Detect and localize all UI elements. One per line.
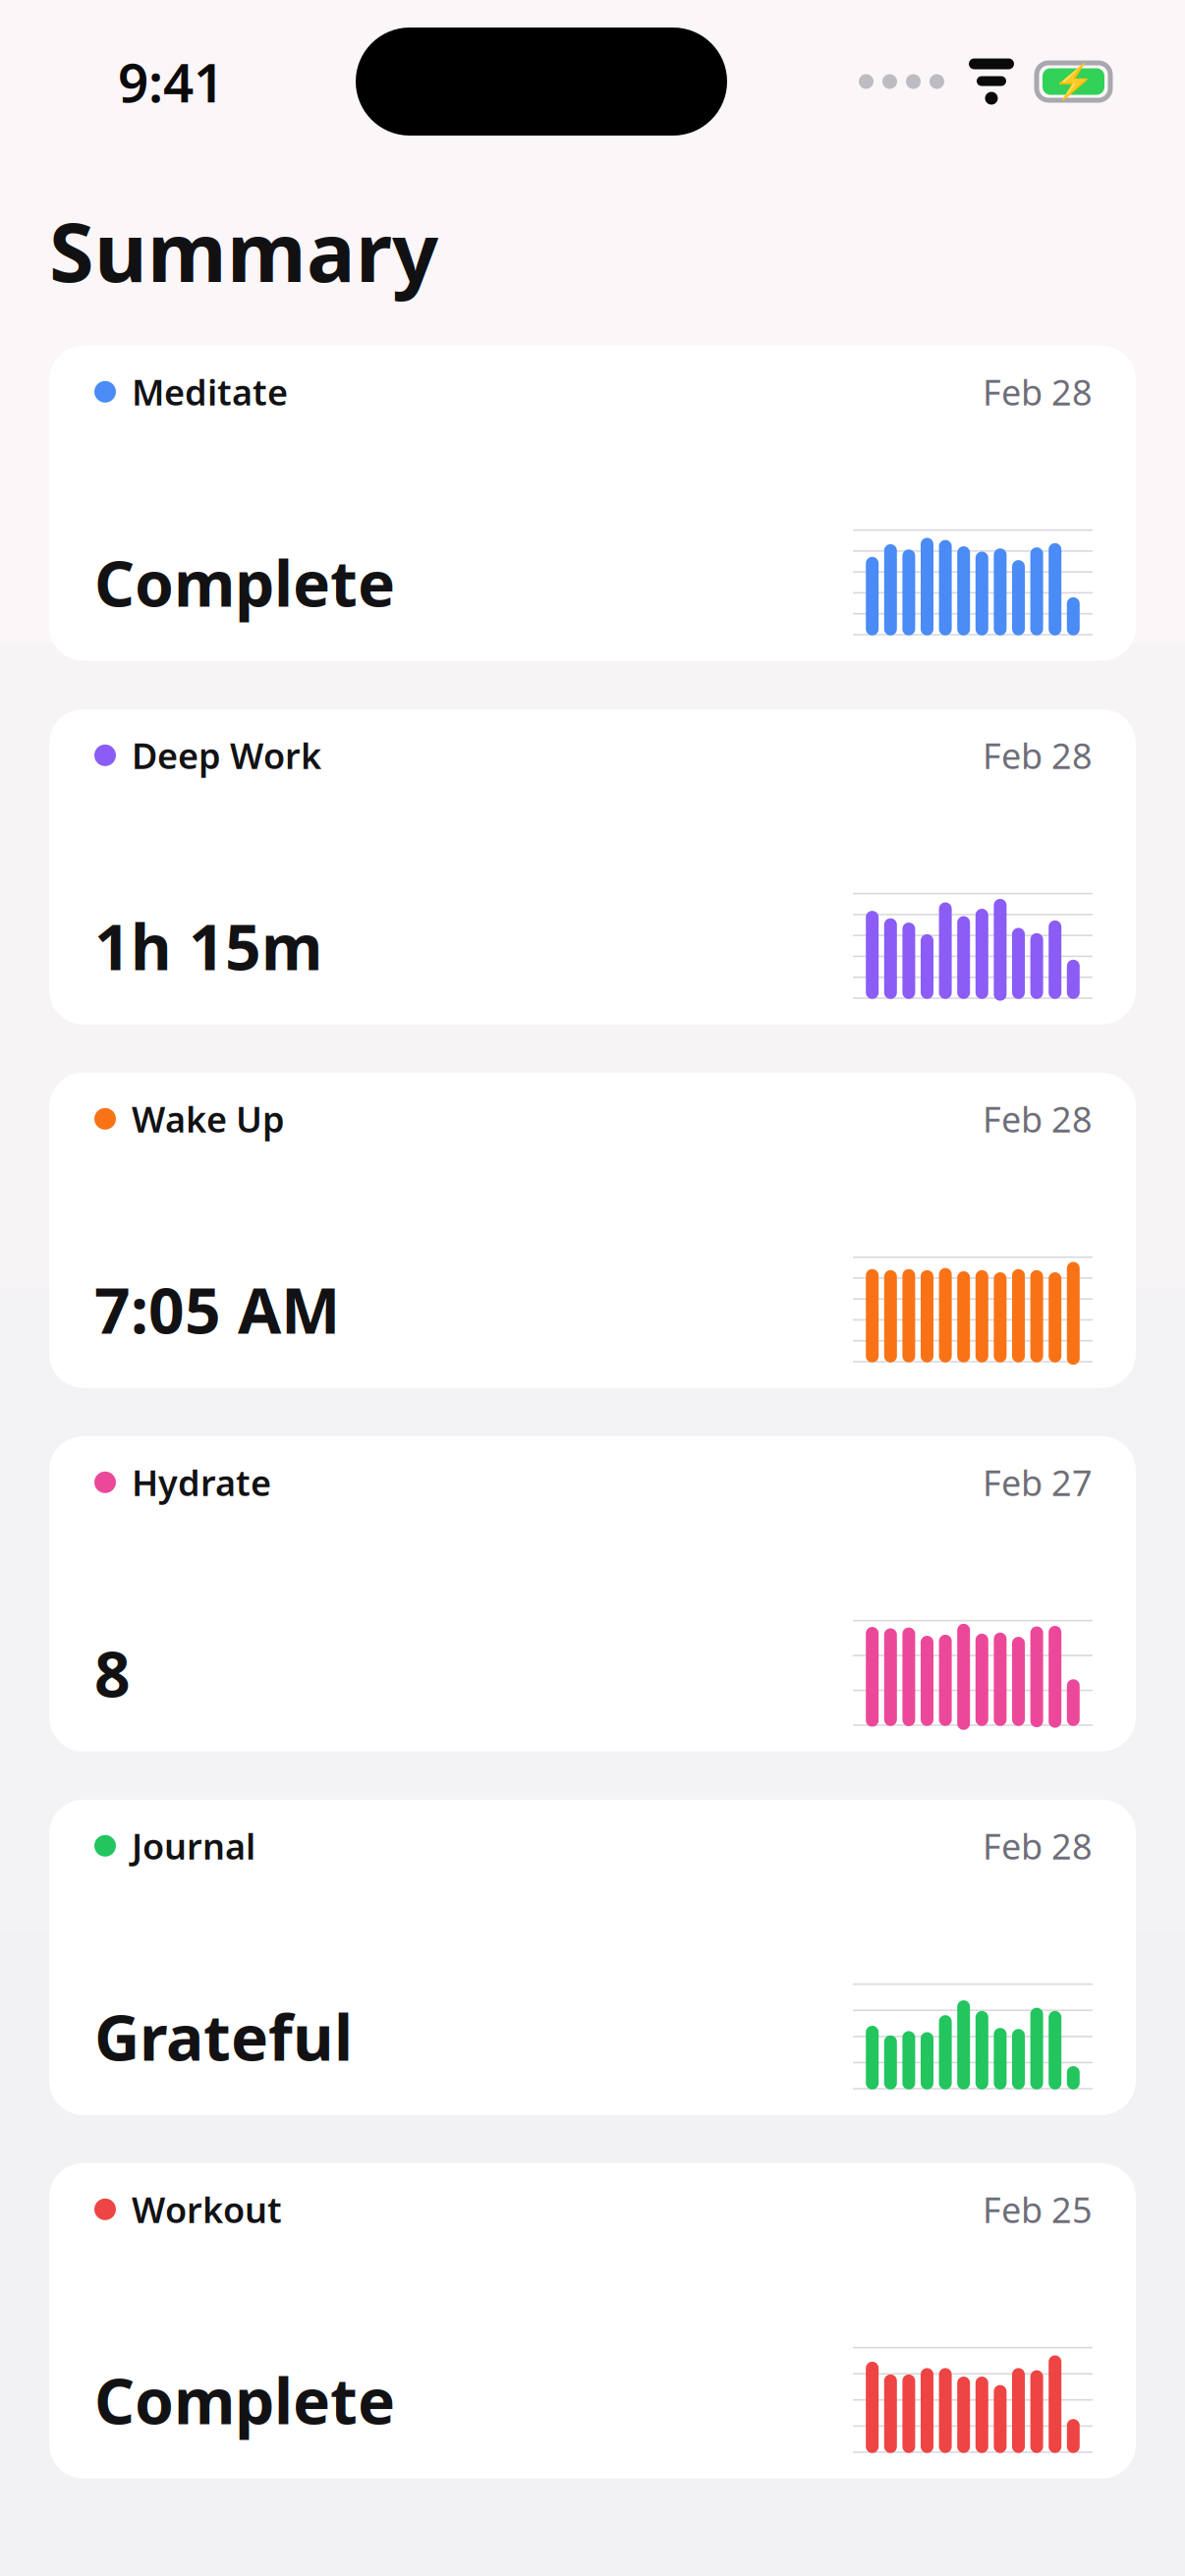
staticText: Feb 28 <box>983 732 1093 779</box>
button[interactable]: Journal <box>49 1800 1136 2115</box>
button[interactable]: Workout <box>49 2163 1136 2479</box>
staticText: Summary <box>49 196 438 304</box>
staticText: Journal <box>132 1822 255 1869</box>
staticText: Meditate <box>132 368 288 415</box>
staticText: Feb 25 <box>983 2186 1093 2233</box>
staticText: Wake Up <box>132 1095 285 1142</box>
staticText: Workout <box>132 2186 282 2233</box>
staticText: Feb 28 <box>983 1822 1093 1869</box>
staticText: Feb 27 <box>983 1459 1093 1506</box>
staticText: Complete <box>94 2358 395 2442</box>
button[interactable]: Deep Work <box>49 709 1136 1025</box>
staticText: 1h 15m <box>94 904 322 988</box>
staticText: Feb 28 <box>983 1095 1093 1142</box>
staticText: Hydrate <box>132 1459 271 1506</box>
staticText: 9:41 <box>118 46 224 117</box>
staticText: Feb 28 <box>983 368 1093 415</box>
staticText: Grateful <box>94 1995 353 2078</box>
button[interactable]: Wake Up <box>49 1073 1136 1388</box>
staticText: Complete <box>94 541 395 624</box>
button[interactable]: Hydrate <box>49 1436 1136 1752</box>
button[interactable]: Meditate <box>49 346 1136 661</box>
staticText: 8 <box>94 1631 131 1715</box>
staticText: ⚡ <box>1052 62 1095 101</box>
staticText: 7:05 AM <box>94 1268 340 1351</box>
staticText: Deep Work <box>132 732 321 779</box>
